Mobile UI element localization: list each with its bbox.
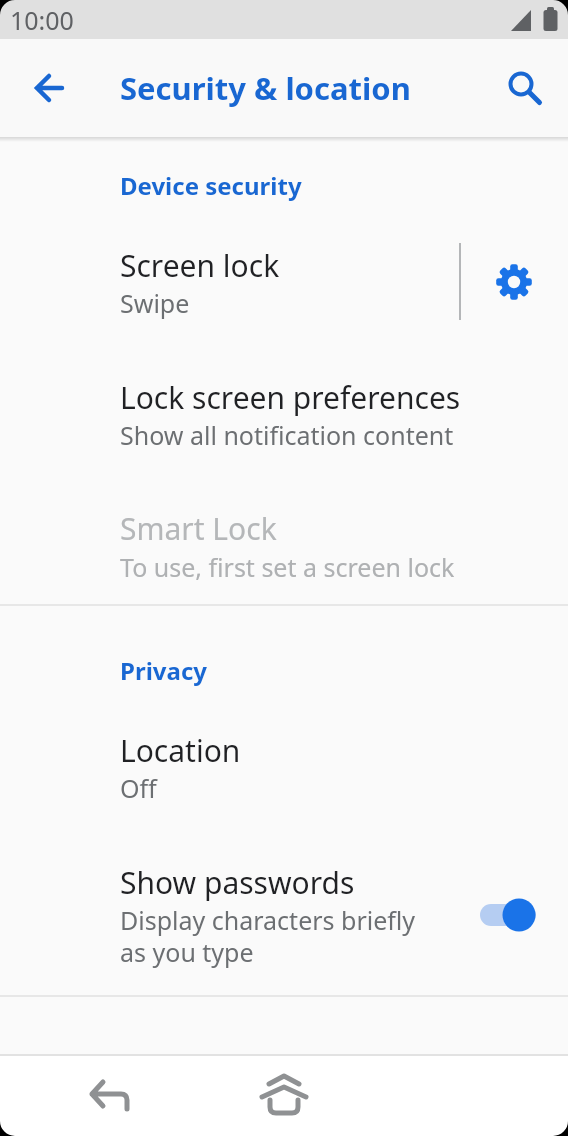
button[interactable] (260, 1074, 308, 1122)
staticText: Display characters briefly (120, 903, 416, 937)
button[interactable] (472, 885, 540, 945)
button[interactable]: Screen lock (0, 230, 568, 332)
staticText: Swipe (120, 286, 190, 320)
staticText: Smart Lock (120, 508, 277, 549)
button[interactable] (24, 64, 72, 112)
button[interactable]: Location (0, 715, 568, 820)
staticText: Lock screen preferences (120, 377, 461, 418)
button[interactable]: Lock screen preferences (0, 362, 568, 462)
staticText: Privacy (120, 654, 207, 687)
button[interactable] (85, 1071, 133, 1119)
button[interactable]: Show passwords (0, 848, 568, 978)
staticText: Security & location (120, 67, 411, 109)
button[interactable]: Smart Lock (0, 494, 568, 594)
staticText: To use, first set a screen lock (120, 550, 455, 584)
staticText: 10:00 (10, 3, 74, 37)
staticText: Screen lock (120, 245, 280, 286)
button[interactable] (486, 254, 542, 310)
staticText: as you type (120, 935, 254, 969)
staticText: Location (120, 730, 241, 771)
staticText: Show all notification content (120, 418, 454, 452)
staticText: Off (120, 771, 157, 805)
staticText: Device security (120, 169, 302, 202)
staticText: Show passwords (120, 862, 355, 903)
button[interactable] (497, 59, 549, 111)
